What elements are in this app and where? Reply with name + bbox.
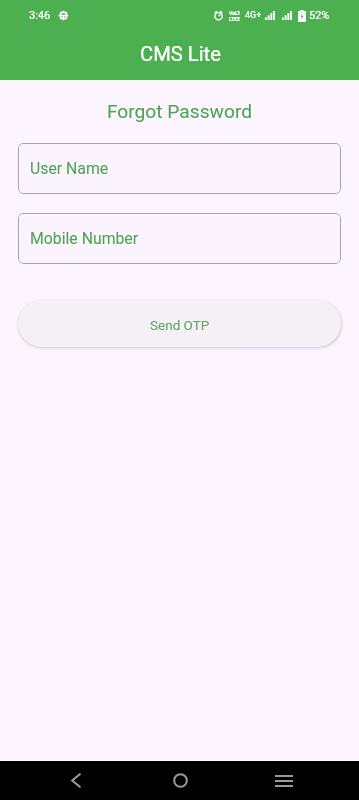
staticText: VoLTE <box>229 10 240 16</box>
staticText: Mobile Number <box>30 229 139 248</box>
button[interactable]: Home <box>128 761 232 800</box>
button[interactable]: User Name <box>18 143 341 194</box>
staticText: LTE2 <box>229 16 240 22</box>
staticText: 3:46 <box>29 9 51 22</box>
staticText: 52% <box>309 9 330 22</box>
button[interactable]: Mobile Number <box>18 213 341 264</box>
staticText: Send OTP <box>150 317 210 333</box>
button[interactable]: Back <box>23 761 128 800</box>
button[interactable]: Send OTP <box>18 300 341 347</box>
staticText: Forgot Password <box>0 100 359 123</box>
staticText: 4G+ <box>245 10 262 21</box>
button[interactable]: Recent apps <box>232 761 336 800</box>
staticText: User Name <box>30 159 109 178</box>
staticText: CMS Lite <box>140 42 221 66</box>
